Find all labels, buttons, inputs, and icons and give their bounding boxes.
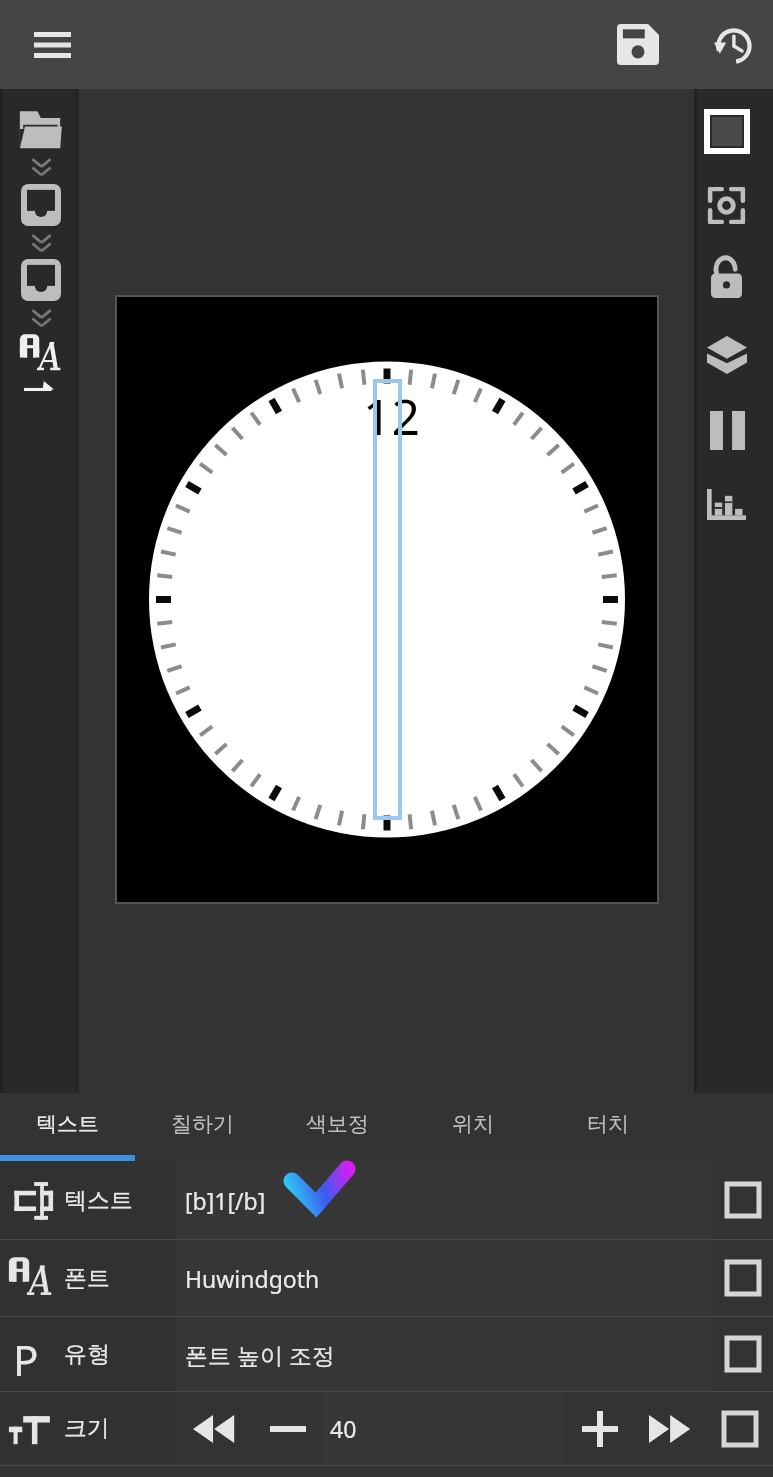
button[interactable]: 텍스트: [0, 1161, 176, 1239]
staticText: 폰트 높이 조정: [185, 1339, 335, 1370]
staticText: [b]1[/b]: [185, 1185, 266, 1216]
staticText: 텍스트: [36, 1111, 99, 1137]
staticText: 폰트: [64, 1264, 110, 1293]
button[interactable]: 칠하기: [135, 1093, 270, 1155]
button[interactable]: Collapse 3: [22, 300, 61, 337]
button[interactable]: [b]1[/b]: [176, 1161, 712, 1239]
button[interactable]: Decrease: [254, 1392, 322, 1465]
button[interactable]: Return: [14, 370, 64, 400]
button[interactable]: Toggle: [707, 1392, 773, 1465]
button[interactable]: Frame: [697, 104, 757, 159]
staticText: Huwindgoth: [185, 1263, 320, 1294]
button[interactable]: 크기: [0, 1392, 176, 1465]
button[interactable]: Pause: [700, 403, 755, 458]
button[interactable]: Import 2: [11, 251, 71, 309]
button[interactable]: Save: [607, 12, 669, 76]
button[interactable]: 위치: [405, 1093, 540, 1155]
button[interactable]: 터치: [540, 1093, 675, 1155]
button[interactable]: Toggle: [712, 1240, 773, 1316]
button[interactable]: History: [700, 14, 762, 78]
button[interactable]: 텍스트: [0, 1093, 135, 1155]
button[interactable]: Decrease fast: [176, 1392, 254, 1465]
button[interactable]: Huwindgoth: [176, 1240, 712, 1316]
button[interactable]: Stats: [697, 481, 756, 528]
button[interactable]: Lock: [701, 249, 752, 306]
button[interactable]: Focus: [697, 178, 756, 233]
button[interactable]: 폰트: [0, 1240, 176, 1316]
button[interactable]: Import: [11, 176, 71, 234]
button[interactable]: P: [0, 1317, 176, 1391]
staticText: 유형: [64, 1340, 110, 1369]
staticText: 40: [330, 1413, 357, 1444]
staticText: 크기: [64, 1414, 110, 1443]
staticText: 위치: [452, 1111, 494, 1137]
staticText: P: [13, 1331, 39, 1377]
staticText: 터치: [587, 1111, 629, 1137]
button[interactable]: 색보정: [270, 1093, 405, 1155]
button[interactable]: Open file: [9, 100, 71, 158]
button[interactable]: Increase: [565, 1392, 635, 1465]
button[interactable]: Collapse 2: [22, 225, 61, 262]
button[interactable]: Increase fast: [635, 1392, 707, 1465]
button[interactable]: Toggle: [712, 1317, 773, 1391]
staticText: 텍스트: [64, 1186, 133, 1215]
button[interactable]: Menu: [16, 14, 88, 76]
staticText: 칠하기: [171, 1111, 234, 1137]
staticText: 색보정: [306, 1111, 369, 1137]
button[interactable]: Font: [9, 324, 73, 384]
button[interactable]: 폰트 높이 조정: [176, 1317, 712, 1391]
button[interactable]: Toggle: [712, 1161, 773, 1239]
button[interactable]: Collapse: [22, 149, 61, 186]
staticText: 12: [363, 382, 421, 450]
button[interactable]: 40: [322, 1392, 565, 1465]
button[interactable]: Layers: [697, 328, 757, 382]
